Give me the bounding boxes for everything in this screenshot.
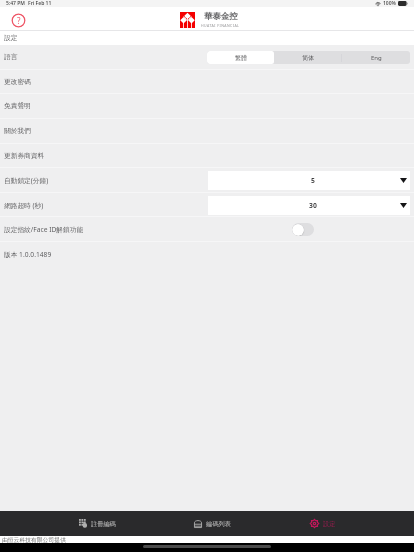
staticText: 100% — [383, 0, 396, 7]
button[interactable]: 更改密碼 — [0, 70, 414, 94]
staticText: 免責聲明 — [4, 102, 31, 110]
staticText: 華泰金控 — [204, 11, 238, 22]
button[interactable]: 關於我們 — [0, 119, 414, 143]
button[interactable]: 註冊編碼 — [79, 511, 116, 536]
button[interactable]: 免責聲明 — [0, 94, 414, 118]
button[interactable]: Eng — [342, 51, 410, 64]
staticText: 設定 — [4, 34, 18, 42]
staticText: 简体 — [302, 54, 314, 62]
staticText: 設定指紋/Face ID解鎖功能 — [4, 225, 84, 234]
staticText: 由恒云科技有限公司提供 — [2, 536, 66, 543]
button[interactable]: 繁體 — [207, 51, 274, 64]
staticText: 更改密碼 — [4, 78, 31, 86]
staticText: 繁體 — [235, 54, 247, 62]
staticText: 5 — [311, 176, 315, 185]
staticText: ? — [17, 15, 21, 26]
staticText: 5:47 PM — [6, 0, 25, 7]
staticText: 更新券商資料 — [4, 152, 45, 160]
staticText: 版本 1.0.0.1489 — [4, 250, 52, 259]
staticText: 30 — [309, 201, 317, 210]
button[interactable]: 更新券商資料 — [0, 144, 414, 168]
button[interactable]: 編碼列表 — [194, 511, 231, 536]
staticText: 設定 — [323, 520, 336, 528]
staticText: 編碼列表 — [206, 520, 231, 528]
button[interactable]: Toggle biometric unlock — [292, 223, 314, 236]
staticText: HUATAI FINANCIAL — [201, 23, 240, 28]
staticText: 關於我們 — [4, 127, 31, 135]
staticText: 語言 — [4, 53, 18, 61]
staticText: 自動鎖定(分鐘) — [4, 176, 49, 185]
staticText: 註冊編碼 — [91, 520, 116, 528]
staticText: Fri Feb 11 — [28, 0, 52, 7]
button[interactable]: 5 — [208, 171, 410, 190]
button[interactable]: Help — [11, 13, 26, 28]
button[interactable]: 简体 — [274, 51, 342, 64]
button[interactable]: 30 — [208, 196, 410, 215]
staticText: Eng — [371, 54, 382, 62]
staticText: 網路超時 (秒) — [4, 201, 44, 210]
button[interactable]: 設定 — [310, 511, 336, 536]
